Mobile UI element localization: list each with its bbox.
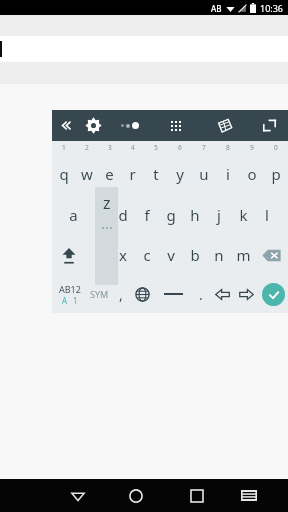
staticText: SYM <box>90 288 109 300</box>
staticText: e <box>105 164 114 184</box>
staticText: a <box>69 205 78 225</box>
staticText: 8 <box>226 143 230 152</box>
button[interactable]: g <box>159 194 183 235</box>
staticText: m <box>236 245 251 265</box>
button[interactable]: a <box>61 194 86 235</box>
staticText: c <box>143 245 151 265</box>
button[interactable]: r <box>121 153 144 194</box>
staticText: t <box>153 164 159 184</box>
button[interactable]: Home <box>103 479 169 512</box>
button[interactable]: t <box>144 153 168 194</box>
button[interactable]: , <box>112 275 130 313</box>
button[interactable]: Resize keyboard <box>250 110 288 141</box>
button[interactable]: SYM <box>87 275 112 313</box>
staticText: j <box>217 205 221 225</box>
staticText: 9 <box>250 143 254 152</box>
staticText: 1 <box>62 143 66 152</box>
button[interactable]: Apps <box>152 110 200 141</box>
button[interactable]: v <box>159 235 183 275</box>
staticText: . <box>199 285 203 304</box>
button[interactable]: k <box>231 194 255 235</box>
button[interactable]: q <box>52 153 75 194</box>
button[interactable]: Key preview z <box>95 187 118 285</box>
button[interactable]: Change language <box>130 275 154 313</box>
staticText: AB <box>211 3 222 14</box>
staticText: r <box>129 164 136 184</box>
button[interactable]: u <box>192 153 216 194</box>
button[interactable]: c <box>135 235 159 275</box>
staticText: g <box>166 205 176 225</box>
staticText: f <box>144 205 150 225</box>
staticText: i <box>226 164 230 184</box>
staticText: , <box>119 285 123 304</box>
button[interactable]: Shift <box>52 235 86 275</box>
button[interactable]: Enter <box>258 275 288 313</box>
button[interactable]: e <box>98 153 121 194</box>
staticText: q <box>59 164 69 184</box>
staticText: x <box>119 245 127 265</box>
staticText: l <box>265 205 269 225</box>
button[interactable]: Move left <box>210 275 234 313</box>
staticText: h <box>190 205 200 225</box>
staticText: A <box>62 295 68 306</box>
button[interactable]: p <box>264 153 288 194</box>
staticText: y <box>176 164 184 184</box>
button[interactable]: z <box>86 235 111 275</box>
button[interactable]: m <box>231 235 255 275</box>
button[interactable]: h <box>183 194 207 235</box>
button[interactable]: l <box>255 194 279 235</box>
button[interactable]: x <box>111 235 135 275</box>
staticText: v <box>167 245 175 265</box>
button[interactable]: Backspace <box>255 235 288 275</box>
staticText: 1 <box>73 295 78 306</box>
button[interactable]: o <box>240 153 264 194</box>
staticText: n <box>214 245 224 265</box>
staticText: b <box>190 245 200 265</box>
button[interactable]: Settings <box>78 110 108 141</box>
staticText: 5 <box>154 143 158 152</box>
staticText: 6 <box>178 143 182 152</box>
staticText: 10:36 <box>260 2 284 14</box>
button[interactable]: Page indicator <box>108 110 152 141</box>
staticText: 4 <box>131 143 135 152</box>
staticText: 7 <box>202 143 206 152</box>
staticText: AB12 <box>59 283 81 295</box>
button[interactable]: Input mode <box>52 275 87 313</box>
button[interactable]: f <box>135 194 159 235</box>
button[interactable]: b <box>183 235 207 275</box>
button[interactable]: s <box>86 194 111 235</box>
button[interactable]: d <box>111 194 135 235</box>
staticText: w <box>81 164 93 184</box>
staticText: 3 <box>108 143 112 152</box>
staticText: o <box>247 164 257 184</box>
button[interactable]: i <box>216 153 240 194</box>
button[interactable]: Stickers <box>200 110 250 141</box>
button[interactable]: j <box>207 194 231 235</box>
button[interactable]: w <box>75 153 98 194</box>
staticText: k <box>239 205 248 225</box>
button[interactable]: . <box>192 275 210 313</box>
button[interactable]: Move right <box>234 275 258 313</box>
staticText: 2 <box>85 143 89 152</box>
staticText: 0 <box>274 143 278 152</box>
button[interactable]: Recent apps <box>169 479 224 512</box>
button[interactable]: n <box>207 235 231 275</box>
button[interactable]: y <box>168 153 192 194</box>
staticText: p <box>271 164 281 184</box>
button[interactable]: Back <box>53 479 103 512</box>
staticText: z <box>103 192 111 214</box>
staticText: d <box>118 205 128 225</box>
button[interactable]: Switch keyboard <box>224 479 274 512</box>
button[interactable]: Collapse <box>52 110 78 141</box>
staticText: u <box>199 164 209 184</box>
button[interactable]: Space <box>154 275 192 313</box>
